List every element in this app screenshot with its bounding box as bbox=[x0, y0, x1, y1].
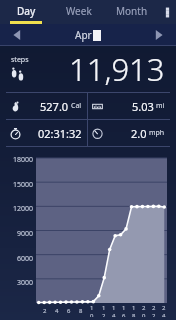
button[interactable]: More options bbox=[158, 0, 176, 24]
staticText: Apr bbox=[75, 28, 92, 42]
staticText: Week bbox=[66, 4, 92, 18]
button[interactable]: Month bbox=[105, 0, 158, 24]
staticText: mi bbox=[156, 101, 165, 111]
staticText: Day bbox=[17, 4, 36, 18]
staticText: steps bbox=[11, 55, 29, 65]
staticText: 5.03 bbox=[132, 99, 154, 114]
staticText: 11,913 bbox=[69, 48, 165, 90]
staticText: 2.0 bbox=[131, 126, 147, 141]
staticText: 16 bbox=[122, 304, 127, 317]
button[interactable]: 527.0 bbox=[6, 93, 87, 119]
staticText: 22 bbox=[152, 304, 157, 317]
staticText: 12 bbox=[102, 304, 107, 317]
staticText: 15000 bbox=[13, 180, 34, 190]
button[interactable]: Apr bbox=[34, 24, 142, 46]
staticText: Month bbox=[116, 4, 148, 18]
staticText: 18000 bbox=[13, 155, 34, 165]
staticText: 14 bbox=[112, 304, 117, 317]
staticText: 02:31:32 bbox=[38, 126, 82, 141]
staticText: 2 bbox=[43, 307, 47, 315]
button[interactable]: 2.0 bbox=[88, 120, 170, 146]
button[interactable]: 5.03 bbox=[88, 93, 170, 119]
staticText: mph bbox=[149, 128, 165, 138]
staticText: 6 bbox=[67, 307, 71, 315]
staticText: 20 bbox=[142, 304, 147, 317]
button[interactable]: Week bbox=[52, 0, 105, 24]
staticText: 8 bbox=[79, 307, 83, 315]
staticText: 4 bbox=[55, 307, 59, 315]
staticText: 9000 bbox=[17, 229, 34, 239]
staticText: Cal bbox=[71, 101, 82, 111]
staticText: 527.0 bbox=[40, 99, 69, 114]
staticText: 24 bbox=[162, 304, 167, 317]
staticText: 10 bbox=[90, 304, 96, 317]
button[interactable]: 02:31:32 bbox=[6, 120, 87, 146]
button[interactable]: Previous day bbox=[0, 24, 34, 46]
staticText: 6000 bbox=[17, 254, 34, 264]
staticText: 12000 bbox=[13, 204, 34, 214]
button[interactable]: Day bbox=[0, 0, 52, 24]
button[interactable]: Next day bbox=[142, 24, 176, 46]
staticText: 3000 bbox=[17, 278, 34, 288]
staticText: 18 bbox=[132, 304, 137, 317]
